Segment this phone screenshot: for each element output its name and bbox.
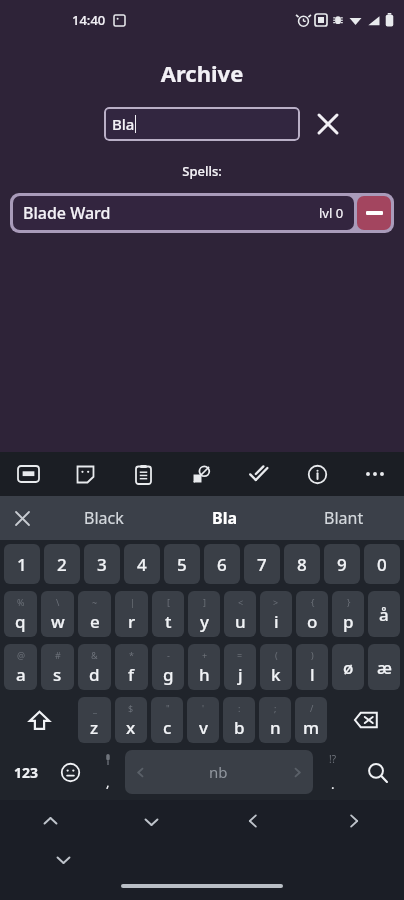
button[interactable]: % <box>4 591 37 637</box>
button[interactable]: | <box>115 591 148 637</box>
button[interactable]: $ <box>115 697 147 743</box>
staticText: 6 <box>217 553 227 576</box>
staticText: !? <box>329 752 337 766</box>
staticText: z <box>90 716 99 739</box>
button[interactable]: * <box>115 644 148 690</box>
staticText: d <box>89 663 100 686</box>
button[interactable]: < <box>224 591 256 637</box>
button[interactable]: Move down <box>101 800 202 842</box>
staticText: % <box>17 596 25 608</box>
button[interactable]: Checkmark <box>230 452 288 496</box>
button[interactable]: } <box>332 591 364 637</box>
button[interactable]: More <box>346 452 404 496</box>
button[interactable]: + <box>188 644 220 690</box>
button[interactable]: ( <box>260 644 292 690</box>
staticText: i <box>274 610 279 633</box>
button[interactable]: > <box>260 591 292 637</box>
button[interactable]: Move left <box>202 800 303 842</box>
button[interactable]: " <box>151 697 183 743</box>
button[interactable]: Clipboard <box>114 452 172 496</box>
staticText: y <box>200 610 209 633</box>
button[interactable]: @ <box>4 644 37 690</box>
staticText: & <box>91 649 98 661</box>
staticText: [ <box>167 596 170 608</box>
button[interactable]: ø <box>332 644 364 690</box>
button[interactable]: Blant <box>284 496 404 540</box>
staticText: j <box>238 663 243 686</box>
button[interactable]: æ <box>368 644 400 690</box>
button[interactable]: - <box>152 644 184 690</box>
staticText: k <box>271 663 281 686</box>
button[interactable]: : <box>223 697 255 743</box>
button[interactable]: _ <box>78 697 111 743</box>
button[interactable]: Search <box>352 749 402 795</box>
button[interactable]: Move up <box>0 800 101 842</box>
button[interactable]: Bla <box>104 107 300 141</box>
button[interactable]: ; <box>259 697 291 743</box>
button[interactable]: Move right <box>303 800 404 842</box>
staticText: lvl 0 <box>319 204 344 222</box>
staticText: * <box>129 649 134 661</box>
button[interactable]: Translate <box>172 452 230 496</box>
staticText: $ <box>128 702 134 714</box>
staticText: } <box>347 596 351 608</box>
button[interactable]: [ <box>152 591 184 637</box>
staticText: c <box>163 716 172 739</box>
button[interactable]: Hide keyboard <box>48 844 78 874</box>
button[interactable]: \ <box>41 591 74 637</box>
button[interactable]: & <box>78 644 111 690</box>
button[interactable]: / <box>295 697 327 743</box>
button[interactable]: 7 <box>244 544 280 584</box>
button[interactable]: Space <box>125 750 313 794</box>
staticText: ; <box>274 702 277 714</box>
staticText: m <box>303 716 320 739</box>
button[interactable]: ] <box>188 591 220 637</box>
button[interactable]: 9 <box>324 544 360 584</box>
staticText: 9 <box>337 553 347 576</box>
button[interactable]: å <box>368 591 400 637</box>
button[interactable]: # <box>41 644 74 690</box>
button[interactable]: = <box>224 644 256 690</box>
button[interactable]: 1 <box>4 544 40 584</box>
button[interactable]: 4 <box>124 544 160 584</box>
staticText: 5 <box>177 553 187 576</box>
button[interactable]: ' <box>187 697 219 743</box>
button[interactable]: 5 <box>164 544 200 584</box>
staticText: h <box>199 663 210 686</box>
button[interactable]: Backspace <box>329 696 402 744</box>
button[interactable]: { <box>296 591 328 637</box>
button[interactable]: Remove Blade Ward <box>357 196 391 230</box>
button[interactable]: 8 <box>284 544 320 584</box>
button[interactable]: 0 <box>364 544 400 584</box>
button[interactable]: Clear search <box>310 106 346 142</box>
button[interactable]: ) <box>296 644 328 690</box>
button[interactable]: Voice input and comma <box>90 749 125 795</box>
staticText: w <box>51 610 65 633</box>
button[interactable]: 6 <box>204 544 240 584</box>
button[interactable]: GIF <box>0 452 57 496</box>
button[interactable]: Black <box>44 496 164 540</box>
staticText: # <box>55 649 61 661</box>
staticText: æ <box>377 656 392 679</box>
button[interactable]: Bla <box>164 496 284 540</box>
button[interactable]: 3 <box>84 544 120 584</box>
button[interactable]: Punctuation <box>313 749 352 795</box>
button[interactable]: Info <box>288 452 346 496</box>
button[interactable]: Sticker <box>57 452 114 496</box>
staticText: s <box>53 663 62 686</box>
staticText: ( <box>275 649 278 661</box>
button[interactable]: 123 <box>2 749 51 795</box>
staticText: 123 <box>14 763 39 782</box>
staticText: u <box>235 610 246 633</box>
staticText: 3 <box>97 553 107 576</box>
staticText: å <box>379 603 389 626</box>
button[interactable]: Close suggestions <box>0 496 44 540</box>
button[interactable]: 2 <box>44 544 80 584</box>
staticText: 7 <box>257 553 267 576</box>
button[interactable]: Blade Ward <box>10 193 394 233</box>
button[interactable]: Shift <box>2 696 76 744</box>
button[interactable]: Emoji <box>51 749 90 795</box>
staticText: l <box>310 663 315 686</box>
staticText: ) <box>311 649 314 661</box>
button[interactable]: ~ <box>78 591 111 637</box>
